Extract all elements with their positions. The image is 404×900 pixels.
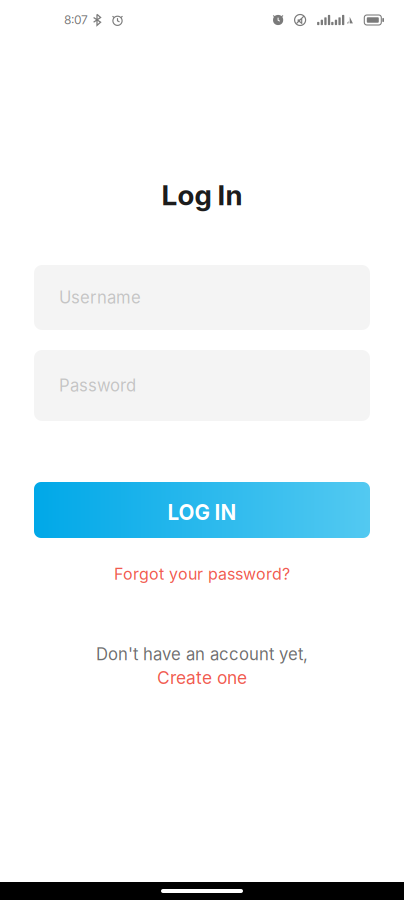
button[interactable]: Password	[34, 350, 370, 421]
staticText: Create one	[157, 667, 247, 688]
staticText: LOG IN	[167, 500, 236, 525]
staticText: Password	[59, 375, 136, 396]
button[interactable]: Username	[34, 265, 370, 330]
staticText: Forgot your password?	[114, 564, 290, 584]
button[interactable]: LOG IN	[34, 482, 370, 538]
staticText: Username	[59, 287, 141, 308]
button[interactable]: Forgot your password?	[34, 559, 370, 589]
staticText: Log In	[161, 178, 242, 212]
button[interactable]: Create one	[157, 667, 247, 688]
staticText: Don't have an account yet,	[96, 644, 308, 664]
staticText: 8:07	[64, 13, 88, 27]
